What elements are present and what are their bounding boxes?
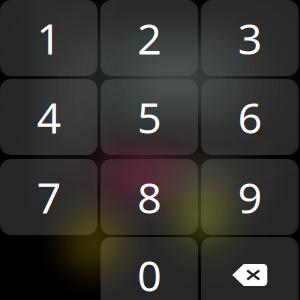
button[interactable]: 2	[100, 0, 198, 76]
button[interactable]: Delete	[201, 237, 298, 300]
button[interactable]: 6	[201, 79, 298, 155]
staticText: 4	[37, 89, 61, 145]
button[interactable]: 8	[100, 159, 198, 235]
button[interactable]: 4	[0, 79, 97, 155]
staticText: 3	[238, 10, 262, 66]
button[interactable]: 1	[0, 0, 97, 76]
staticText: 1	[37, 10, 61, 66]
staticText: 6	[238, 89, 262, 145]
staticText: 0	[137, 247, 161, 300]
button[interactable]: 3	[201, 0, 298, 76]
staticText: 5	[137, 89, 161, 145]
staticText: 7	[37, 169, 61, 225]
button[interactable]: 7	[0, 159, 97, 235]
staticText: 8	[137, 169, 161, 225]
button[interactable]: 0	[100, 237, 198, 300]
staticText: 9	[238, 169, 262, 225]
button[interactable]: 9	[201, 159, 298, 235]
button[interactable]: 5	[100, 79, 198, 155]
staticText: 2	[137, 10, 161, 66]
